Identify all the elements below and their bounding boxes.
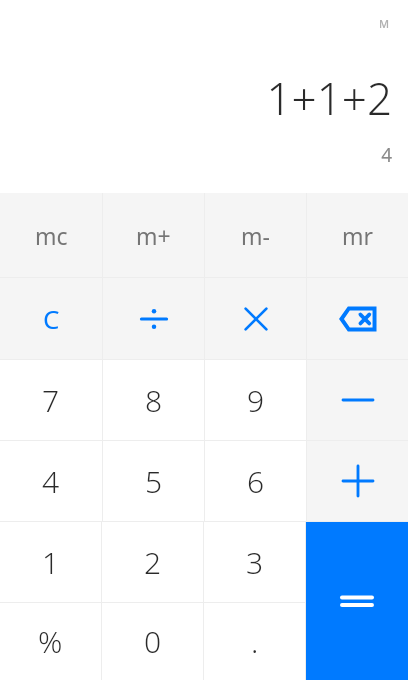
staticText: 1+1+2 — [266, 68, 392, 128]
staticText: mr — [342, 220, 374, 251]
button[interactable]: 8 — [103, 360, 204, 440]
button[interactable]: . — [204, 603, 305, 680]
staticText: 8 — [145, 380, 163, 421]
staticText: . — [251, 621, 259, 662]
button[interactable]: Minus — [307, 360, 408, 440]
staticText: 4 — [42, 461, 60, 502]
staticText: 1 — [42, 542, 60, 583]
button[interactable]: mc — [0, 193, 102, 277]
staticText: 9 — [247, 380, 265, 421]
button[interactable]: Equals — [306, 522, 408, 680]
button[interactable]: 6 — [205, 441, 306, 521]
staticText: m- — [241, 220, 270, 251]
button[interactable]: 2 — [102, 522, 203, 602]
staticText: 7 — [42, 380, 60, 421]
button[interactable]: C — [0, 278, 102, 359]
button[interactable]: m+ — [103, 193, 204, 277]
button[interactable]: 1 — [0, 522, 101, 602]
button[interactable]: mr — [307, 193, 408, 277]
staticText: 5 — [145, 461, 163, 502]
button[interactable]: m- — [205, 193, 306, 277]
staticText: mc — [35, 220, 68, 251]
button[interactable]: Multiply — [205, 278, 306, 359]
button[interactable]: 9 — [205, 360, 306, 440]
staticText: % — [38, 621, 63, 662]
button[interactable]: Backspace — [307, 278, 408, 359]
staticText: 2 — [144, 542, 162, 583]
button[interactable]: % — [0, 603, 101, 680]
button[interactable]: 3 — [204, 522, 305, 602]
button[interactable]: 7 — [0, 360, 102, 440]
button[interactable]: Plus — [307, 441, 408, 521]
staticText: 6 — [247, 461, 265, 502]
button[interactable]: 0 — [102, 603, 203, 680]
button[interactable]: 4 — [0, 441, 102, 521]
button[interactable]: Divide — [103, 278, 204, 359]
staticText: 3 — [246, 542, 264, 583]
staticText: 0 — [144, 621, 162, 662]
staticText: 4 — [381, 142, 392, 168]
staticText: m+ — [136, 220, 171, 251]
button[interactable]: 5 — [103, 441, 204, 521]
staticText: C — [43, 301, 60, 336]
staticText: M — [379, 16, 390, 31]
